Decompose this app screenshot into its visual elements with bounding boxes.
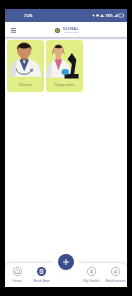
staticText: Diagnostic bbox=[54, 82, 75, 88]
button[interactable]: Notifications bbox=[103, 267, 127, 283]
button[interactable]: Doctor bbox=[7, 40, 44, 92]
staticText: Notifications bbox=[105, 278, 126, 283]
staticText: 78% bbox=[105, 13, 113, 18]
button[interactable]: Menu bbox=[8, 24, 19, 35]
button[interactable]: Diagnostic bbox=[46, 40, 83, 92]
button[interactable]: Home bbox=[5, 267, 29, 283]
button[interactable]: Add bbox=[58, 254, 74, 270]
staticText: Doctor bbox=[19, 82, 33, 88]
staticText: Home bbox=[12, 278, 22, 283]
staticText: Book Now bbox=[33, 278, 50, 283]
staticText: YOUR CLINIC bbox=[64, 31, 79, 34]
button[interactable]: My Health bbox=[79, 267, 103, 283]
staticText: My Health bbox=[83, 278, 100, 283]
staticText: GLOBAL bbox=[63, 26, 79, 31]
button[interactable]: Book Now bbox=[29, 267, 53, 283]
staticText: 7:26 bbox=[24, 13, 33, 19]
